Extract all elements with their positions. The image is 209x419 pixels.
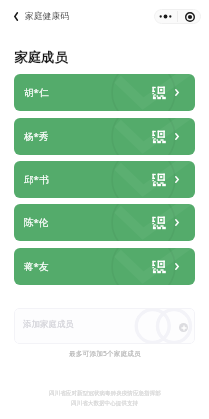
staticText: 最多可添加5个家庭成员 [69,349,141,358]
button[interactable]: 陈*伦 [14,204,195,241]
button[interactable]: More [154,9,177,24]
staticText: 家庭健康码 [25,11,69,22]
button[interactable]: Close [178,9,201,24]
button[interactable]: Back [8,8,24,24]
button[interactable]: 胡*仁 [14,74,195,111]
staticText: 添加家庭成员 [23,319,74,330]
staticText: 胡*仁 [24,86,49,99]
button[interactable]: 杨*秀 [14,118,195,155]
staticText: 蒋*友 [24,260,49,273]
button[interactable]: 邱*书 [14,161,195,198]
staticText: 陈*伦 [24,216,49,229]
staticText: 四川省大数据中心提供支持 [71,400,139,407]
staticText: 家庭成员 [14,49,68,66]
staticText: 四川省应对新型冠状病毒肺炎疫情应急指挥部 [49,390,161,397]
button[interactable]: 蒋*友 [14,248,195,285]
button[interactable]: Add family member [179,323,188,332]
staticText: 杨*秀 [24,130,49,143]
button[interactable]: 添加家庭成员 [14,308,195,344]
staticText: 邱*书 [24,173,49,186]
